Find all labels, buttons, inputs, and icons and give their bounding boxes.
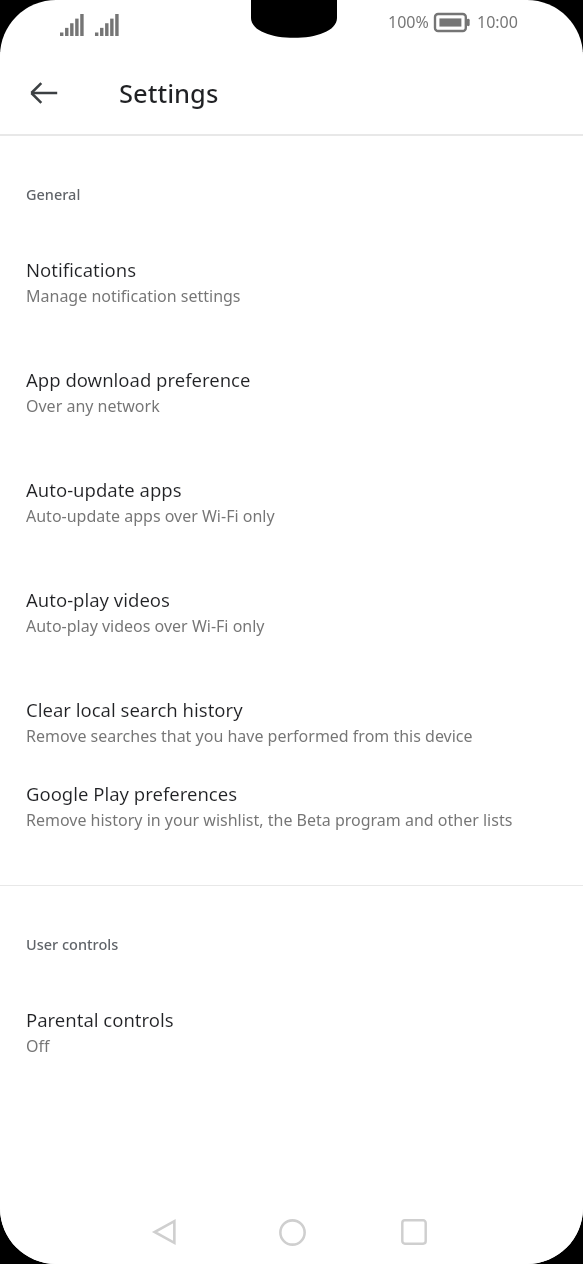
staticText: Off <box>26 1035 50 1057</box>
button[interactable]: Recent apps <box>386 1204 442 1260</box>
button[interactable]: Google Play preferences <box>0 781 583 831</box>
button[interactable]: App download preference <box>0 367 583 417</box>
staticText: Over any network <box>26 395 160 417</box>
staticText: Auto-update apps over Wi-Fi only <box>26 505 275 527</box>
button[interactable]: Notifications <box>0 257 583 307</box>
staticText: General <box>26 184 81 204</box>
button[interactable]: Home <box>264 1204 320 1260</box>
staticText: Auto-update apps <box>26 477 182 502</box>
staticText: Parental controls <box>26 1007 174 1032</box>
button[interactable]: Back <box>14 63 74 123</box>
staticText: 100% <box>388 11 429 33</box>
staticText: Remove searches that you have performed … <box>26 725 473 747</box>
staticText: 10:00 <box>477 11 518 33</box>
staticText: Remove history in your wishlist, the Bet… <box>26 809 513 831</box>
staticText: App download preference <box>26 367 251 392</box>
staticText: User controls <box>26 934 119 954</box>
staticText: Notifications <box>26 257 137 282</box>
button[interactable]: Auto-update apps <box>0 477 583 527</box>
button[interactable]: Clear local search history <box>0 697 583 747</box>
staticText: Clear local search history <box>26 697 243 722</box>
button[interactable]: Back <box>137 1204 193 1260</box>
staticText: Auto-play videos over Wi-Fi only <box>26 615 265 637</box>
staticText: Manage notification settings <box>26 285 241 307</box>
staticText: Google Play preferences <box>26 781 238 806</box>
button[interactable]: Parental controls <box>0 1007 583 1057</box>
button[interactable]: Auto-play videos <box>0 587 583 637</box>
staticText: Auto-play videos <box>26 587 170 612</box>
staticText: Settings <box>119 76 219 111</box>
